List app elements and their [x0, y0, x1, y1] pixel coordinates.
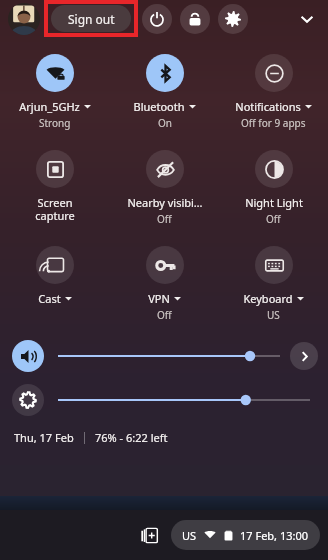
staticText: Screen capture — [35, 195, 75, 223]
button[interactable]: 76% - 6:22 left — [95, 430, 168, 445]
staticText: Sign out — [68, 11, 115, 27]
staticText: US — [182, 528, 197, 543]
button[interactable]: Settings — [218, 4, 248, 34]
staticText: Off — [266, 212, 281, 226]
button[interactable]: Lock — [180, 4, 210, 34]
staticText: 17 Feb, 13:00 — [240, 528, 309, 543]
staticText: Off — [157, 212, 172, 226]
button[interactable]: Screen capture — [0, 150, 110, 223]
button[interactable]: Bluetooth — [110, 54, 219, 130]
staticText: Nearby visibi… — [127, 195, 203, 210]
button[interactable]: Power — [142, 4, 172, 34]
staticText: Off for 9 apps — [241, 116, 306, 130]
staticText: Thu, 17 Feb — [14, 430, 74, 445]
staticText: US — [267, 308, 280, 322]
staticText: Strong — [39, 116, 71, 130]
button[interactable]: US — [171, 520, 320, 550]
staticText: 76% - 6:22 left — [95, 430, 168, 445]
staticText: Keyboard — [243, 291, 293, 306]
button[interactable]: Mute — [12, 340, 44, 372]
staticText: Night Light — [245, 195, 303, 210]
button[interactable]: VPN — [110, 246, 219, 322]
staticText: VPN — [148, 291, 170, 306]
button[interactable]: Account — [8, 3, 40, 35]
button[interactable]: Volume — [58, 344, 280, 368]
button[interactable]: Night Light — [219, 150, 328, 226]
staticText: Notifications — [235, 99, 301, 114]
button[interactable]: Nearby visibi… — [110, 150, 219, 226]
button[interactable]: Collapse — [292, 4, 322, 34]
button[interactable]: Notifications — [219, 54, 328, 130]
button[interactable]: Arjun_5GHz — [0, 54, 110, 130]
staticText: Arjun_5GHz — [19, 99, 80, 114]
button[interactable]: Brightness level — [58, 388, 310, 412]
staticText: Cast — [38, 291, 61, 306]
button[interactable]: Audio settings — [290, 342, 318, 370]
button[interactable]: Keyboard — [219, 246, 328, 322]
button[interactable]: Cast — [0, 246, 110, 306]
button[interactable]: New desk — [133, 519, 165, 551]
staticText: On — [158, 116, 172, 130]
staticText: Bluetooth — [133, 99, 185, 114]
staticText: Off — [157, 308, 172, 322]
button[interactable]: Sign out — [51, 5, 131, 32]
button[interactable]: Brightness — [12, 384, 44, 416]
